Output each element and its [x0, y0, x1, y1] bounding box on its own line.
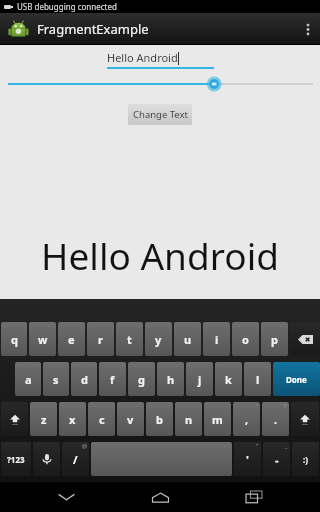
button[interactable]: d — [71, 362, 97, 396]
button[interactable]: Slider — [0, 74, 320, 94]
staticText: m — [212, 412, 223, 427]
button[interactable]: More options — [296, 13, 320, 45]
button[interactable]: a — [15, 362, 41, 396]
button[interactable]: :) — [292, 442, 319, 476]
staticText: ?123 — [7, 454, 25, 465]
button[interactable]: z — [30, 402, 57, 436]
staticText: t — [127, 332, 132, 347]
button[interactable]: u — [174, 322, 201, 356]
staticText: a — [25, 372, 32, 387]
staticText: x — [69, 412, 76, 427]
staticText: s — [53, 372, 59, 387]
staticText: USB debugging connected — [17, 1, 117, 12]
staticText: p — [271, 332, 278, 347]
staticText: o — [242, 332, 249, 347]
button[interactable]: b — [146, 402, 173, 436]
button[interactable]: q — [1, 322, 27, 356]
button[interactable]: i — [203, 322, 230, 356]
staticText: i — [215, 332, 219, 347]
button[interactable]: c — [88, 402, 115, 436]
button[interactable]: Shift — [291, 402, 319, 436]
staticText: e — [68, 332, 75, 347]
staticText: h — [167, 372, 175, 387]
staticText: c — [99, 412, 105, 427]
button[interactable]: Hello Android — [107, 50, 214, 69]
button[interactable]: Space — [91, 442, 232, 476]
button[interactable]: Shift — [1, 402, 28, 436]
button[interactable]: l — [244, 362, 271, 396]
button[interactable]: m — [204, 402, 231, 436]
button[interactable]: k — [215, 362, 242, 396]
button[interactable]: ? — [262, 402, 289, 436]
staticText: , — [245, 412, 249, 427]
button[interactable]: " — [234, 442, 261, 476]
staticText: - — [275, 452, 279, 467]
staticText: l — [256, 372, 260, 387]
staticText: ' — [256, 402, 258, 409]
button[interactable]: r — [87, 322, 114, 356]
staticText: / — [73, 452, 78, 467]
button[interactable]: t — [116, 322, 143, 356]
button[interactable]: Recents — [226, 482, 282, 512]
staticText: " — [256, 442, 259, 449]
button[interactable]: Change Text — [128, 104, 192, 125]
staticText: FragmentExample — [37, 20, 149, 38]
button[interactable]: h — [157, 362, 184, 396]
button[interactable]: Back — [38, 482, 94, 512]
button[interactable]: Home — [132, 482, 188, 512]
button[interactable]: o — [232, 322, 259, 356]
button[interactable]: s — [43, 362, 69, 396]
staticText: b — [156, 412, 163, 427]
staticText: ? — [284, 402, 287, 409]
button[interactable]: w — [29, 322, 56, 356]
staticText: g — [138, 372, 145, 387]
staticText: f — [110, 372, 115, 387]
staticText: d — [81, 372, 88, 387]
staticText: _ — [285, 442, 288, 449]
button[interactable]: ' — [233, 402, 260, 436]
staticText: u — [184, 332, 192, 347]
button[interactable]: p — [261, 322, 288, 356]
staticText: j — [198, 372, 202, 387]
staticText: y — [155, 332, 162, 347]
button[interactable]: Delete — [290, 322, 320, 356]
staticText: @ — [82, 442, 87, 449]
button[interactable]: g — [128, 362, 155, 396]
staticText: Hello Android — [107, 50, 178, 65]
button[interactable]: Voice input — [33, 442, 60, 476]
button[interactable]: y — [145, 322, 172, 356]
staticText: w — [38, 332, 48, 347]
staticText: r — [98, 332, 103, 347]
button[interactable]: e — [58, 322, 85, 356]
staticText: :) — [303, 454, 308, 465]
button[interactable]: @ — [62, 442, 89, 476]
staticText: v — [127, 412, 134, 427]
staticText: q — [11, 332, 18, 347]
staticText: Change Text — [133, 108, 188, 121]
button[interactable]: Done — [273, 362, 320, 396]
button[interactable]: v — [117, 402, 144, 436]
button[interactable]: n — [175, 402, 202, 436]
button[interactable]: x — [59, 402, 86, 436]
staticText: z — [41, 412, 47, 427]
button[interactable]: ?123 — [1, 442, 31, 476]
staticText: . — [274, 412, 278, 427]
staticText: Done — [286, 374, 307, 385]
staticText: n — [185, 412, 193, 427]
button[interactable]: _ — [263, 442, 290, 476]
staticText: ' — [246, 452, 249, 467]
staticText: k — [225, 372, 232, 387]
button[interactable]: j — [186, 362, 213, 396]
staticText: Hello Android — [0, 230, 320, 280]
button[interactable]: f — [99, 362, 126, 396]
